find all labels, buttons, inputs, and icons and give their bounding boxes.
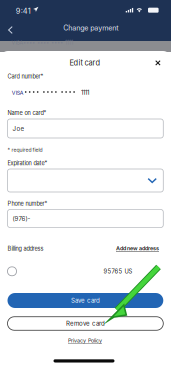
button[interactable]: 95765 US	[7, 265, 163, 277]
button[interactable]: Privacy Policy	[63, 336, 107, 345]
staticText: Phone number*	[7, 200, 47, 207]
staticText: 1111	[81, 89, 89, 96]
staticText: Remove card	[66, 320, 105, 327]
button[interactable]: Save card	[7, 293, 163, 308]
button[interactable]: Close	[150, 55, 165, 70]
staticText: VISA	[12, 90, 24, 96]
button[interactable]: Expiration date	[7, 169, 163, 192]
staticText: 9:41	[16, 6, 31, 15]
staticText: Expiration date*	[7, 160, 47, 167]
staticText: Save card	[71, 297, 100, 304]
staticText: •••• •••• •••• 1111	[23, 39, 73, 46]
staticText: Billing address	[7, 245, 43, 252]
button[interactable]: Add new address	[116, 244, 160, 253]
staticText: Change payment	[63, 24, 118, 32]
staticText: Privacy Policy	[68, 337, 102, 344]
staticText: * required field	[7, 147, 42, 153]
staticText: Add new address	[116, 245, 159, 252]
button[interactable]: Back	[2, 21, 19, 38]
button[interactable]: Remove card	[7, 317, 163, 330]
staticText: VISA	[12, 39, 24, 46]
staticText: Joe	[12, 125, 24, 132]
staticText: Edit card	[69, 58, 100, 67]
staticText: Card number*	[7, 73, 43, 80]
staticText: 95765 US	[103, 268, 132, 275]
staticText: Name on card*	[7, 110, 46, 116]
staticText: (976)-	[12, 215, 30, 222]
